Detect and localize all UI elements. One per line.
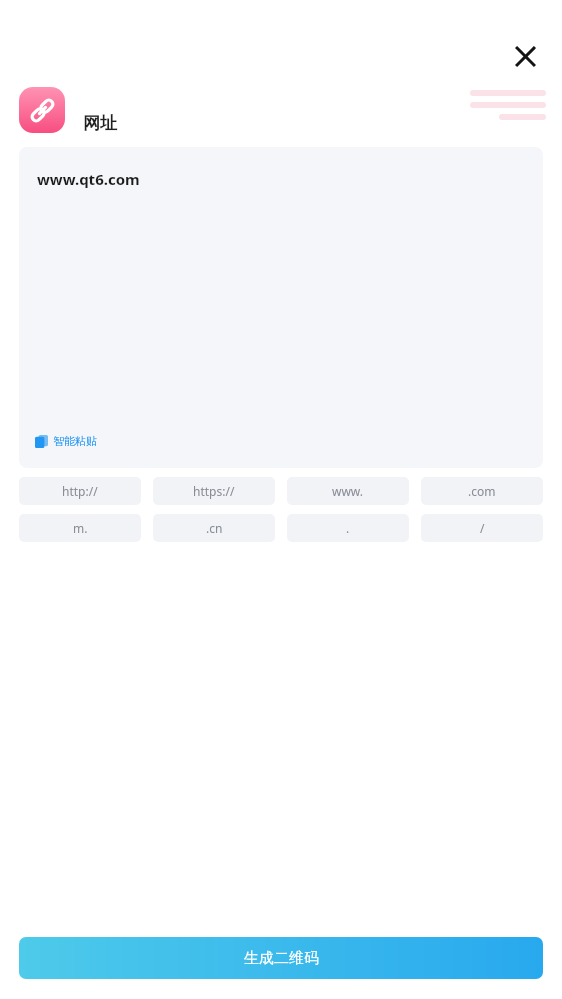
button[interactable]: 智能粘贴	[35, 434, 97, 448]
button[interactable]: www.qt6.com	[19, 147, 543, 468]
button[interactable]: m.	[19, 514, 141, 542]
staticText: .	[346, 520, 350, 536]
button[interactable]: https://	[153, 477, 275, 505]
button[interactable]: .com	[421, 477, 543, 505]
button[interactable]: 生成二维码	[19, 937, 543, 979]
staticText: m.	[73, 520, 88, 536]
staticText: .com	[468, 483, 496, 499]
staticText: 智能粘贴	[53, 434, 97, 448]
staticText: www.qt6.com	[37, 169, 140, 189]
button[interactable]: http://	[19, 477, 141, 505]
staticText: https://	[193, 483, 235, 499]
staticText: /	[480, 520, 485, 536]
staticText: 网址	[83, 113, 117, 134]
button[interactable]: /	[421, 514, 543, 542]
staticText: .cn	[206, 520, 223, 536]
button[interactable]: Close	[501, 32, 549, 80]
staticText: 生成二维码	[244, 949, 319, 968]
button[interactable]: www.	[287, 477, 409, 505]
button[interactable]: .cn	[153, 514, 275, 542]
staticText: www.	[332, 483, 364, 499]
staticText: http://	[62, 483, 98, 499]
